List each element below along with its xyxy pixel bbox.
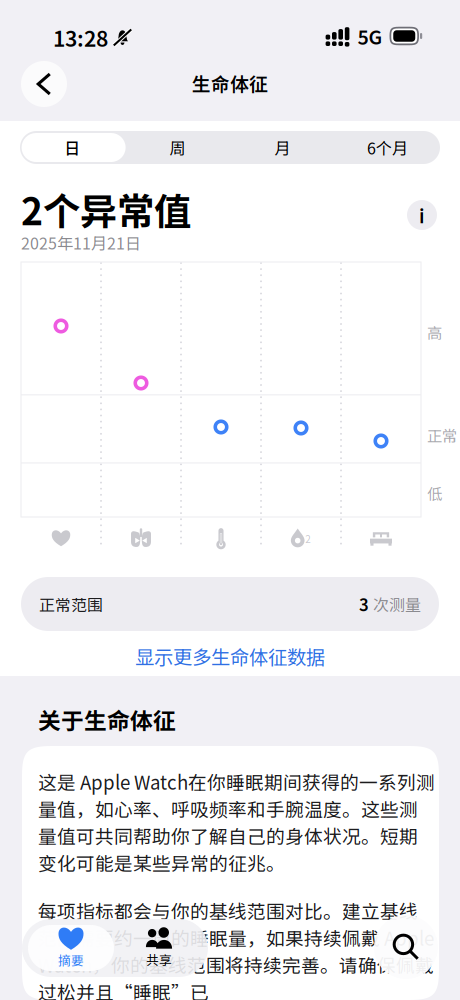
staticText: 月 — [274, 136, 290, 159]
staticText: 生命体征 — [192, 69, 268, 96]
button[interactable]: 共享 — [116, 925, 202, 971]
staticText: 每项指标都会与你的基线范围对比。建立基线范围需要约一周的睡眠量，如果持续佩戴 A… — [38, 897, 434, 1000]
staticText: 2 — [305, 531, 311, 546]
button[interactable]: 日 — [20, 131, 125, 164]
button[interactable]: 关于这项数据 — [407, 200, 437, 230]
staticText: 13:28 — [53, 22, 108, 53]
staticText: 正常 — [427, 424, 457, 446]
staticText: i — [419, 201, 425, 228]
staticText: 日 — [64, 136, 80, 159]
staticText: 高 — [427, 321, 442, 343]
staticText: 3 — [359, 592, 369, 616]
staticText: 这是 Apple Watch在你睡眠期间获得的一系列测量值，如心率、呼吸频率和手… — [38, 768, 435, 876]
staticText: 5G — [357, 22, 382, 50]
button[interactable]: 摘要 — [28, 925, 114, 971]
button[interactable]: 周 — [125, 131, 230, 164]
button[interactable]: 6个月 — [335, 131, 440, 164]
staticText: 2025年11月21日 — [21, 231, 141, 254]
staticText: 显示更多生命体征数据 — [135, 642, 325, 670]
staticText: 正常范围 — [39, 592, 103, 616]
button[interactable]: 月 — [230, 131, 335, 164]
staticText: 周 — [169, 136, 185, 159]
staticText: 共享 — [146, 950, 172, 969]
button[interactable]: 搜索 — [374, 915, 438, 979]
button[interactable]: 返回 — [21, 61, 67, 107]
staticText: 低 — [427, 482, 442, 504]
staticText: 关于生命体征 — [38, 703, 176, 736]
button[interactable]: 正常范围 — [21, 577, 439, 631]
staticText: 6个月 — [367, 136, 408, 159]
button[interactable]: 显示更多生命体征数据 — [110, 643, 350, 669]
staticText: 2个异常值 — [21, 182, 191, 236]
staticText: 摘要 — [58, 951, 84, 969]
staticText: 次测量 — [373, 592, 421, 616]
